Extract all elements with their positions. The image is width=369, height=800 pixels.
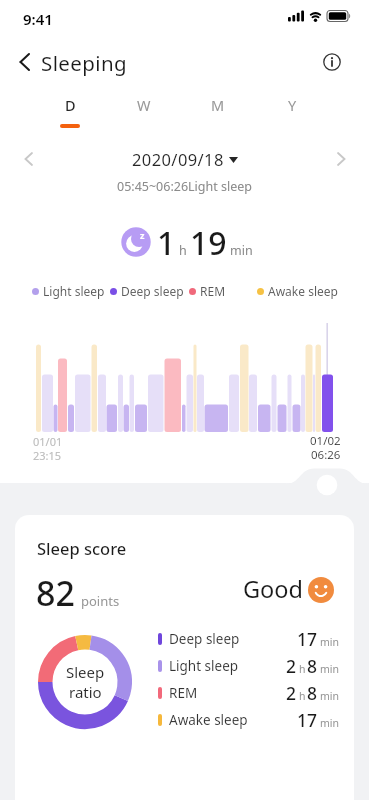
staticText: Light sleep bbox=[169, 657, 239, 675]
staticText: 1 bbox=[157, 221, 176, 265]
staticText: Sleeping bbox=[41, 49, 128, 77]
staticText: 17 bbox=[297, 708, 318, 732]
staticText: min bbox=[320, 635, 340, 649]
staticText: 9:41 bbox=[23, 9, 53, 29]
staticText: 23:15 bbox=[33, 448, 62, 463]
staticText: 2 bbox=[286, 681, 297, 705]
staticText: 19 bbox=[190, 221, 227, 265]
staticText: min bbox=[320, 662, 340, 676]
staticText: Y bbox=[288, 95, 297, 115]
staticText: 2020/09/18 bbox=[132, 148, 224, 170]
staticText: REM bbox=[169, 684, 198, 702]
staticText: 01/02 bbox=[310, 433, 341, 449]
staticText: Awake sleep bbox=[169, 711, 248, 729]
staticText: Sleep score bbox=[37, 537, 127, 559]
staticText: min bbox=[320, 689, 340, 703]
button[interactable]: W bbox=[107, 95, 181, 124]
staticText: min bbox=[320, 716, 340, 730]
staticText: W bbox=[137, 95, 151, 115]
staticText: Deep sleep bbox=[169, 630, 240, 648]
button[interactable]: D bbox=[33, 95, 107, 128]
staticText: 17 bbox=[297, 627, 318, 651]
staticText: min bbox=[230, 242, 253, 259]
staticText: 01/01 bbox=[33, 434, 63, 449]
staticText: 06:26 bbox=[311, 447, 341, 463]
staticText: 8 bbox=[307, 654, 318, 678]
staticText: M bbox=[211, 95, 225, 115]
staticText: Light sleep bbox=[43, 283, 105, 299]
staticText: points bbox=[81, 592, 120, 610]
staticText: Good bbox=[243, 573, 303, 605]
button[interactable] bbox=[318, 48, 346, 76]
staticText: 8 bbox=[307, 681, 318, 705]
staticText: 2 bbox=[286, 654, 297, 678]
staticText: 05:45~06:26Light sleep bbox=[117, 178, 253, 195]
staticText: D bbox=[65, 95, 76, 115]
staticText: h bbox=[299, 662, 306, 676]
staticText: h bbox=[179, 242, 187, 259]
button[interactable]: M bbox=[181, 95, 255, 124]
staticText: REM bbox=[200, 283, 226, 299]
staticText: Deep sleep bbox=[121, 283, 184, 299]
staticText: z bbox=[140, 229, 145, 241]
button[interactable]: Y bbox=[255, 95, 329, 124]
staticText: Awake sleep bbox=[268, 283, 338, 299]
button[interactable] bbox=[8, 46, 40, 78]
button[interactable]: 2020/09/18 bbox=[0, 148, 369, 170]
staticText: 82 bbox=[36, 570, 75, 616]
staticText: h bbox=[299, 689, 306, 703]
staticText: ratio bbox=[69, 682, 102, 702]
staticText: Sleep bbox=[66, 662, 105, 682]
